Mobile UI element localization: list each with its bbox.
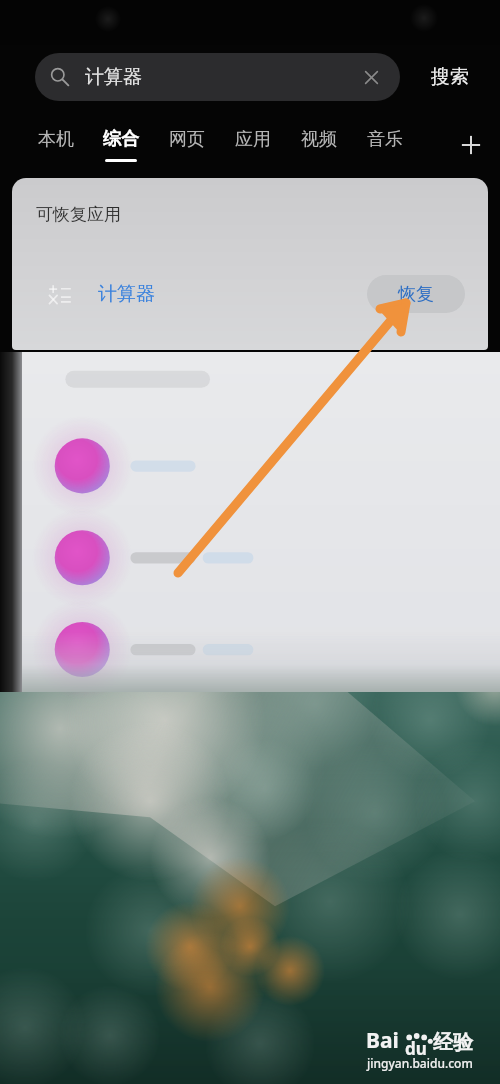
staticText: 经验 — [433, 1030, 473, 1055]
button[interactable]: 计算器 — [35, 53, 400, 101]
button[interactable]: 本机 — [24, 118, 88, 172]
staticText: 应用 — [235, 128, 271, 151]
button[interactable]: Add tab — [442, 118, 500, 172]
staticText: 本机 — [38, 128, 74, 151]
staticText: 计算器 — [98, 282, 155, 306]
staticText: 恢复 — [398, 283, 434, 306]
staticText: 综合 — [103, 128, 139, 151]
button[interactable]: 应用 — [220, 118, 286, 172]
staticText: 计算器 — [85, 65, 142, 89]
button[interactable]: 综合 — [88, 118, 154, 172]
staticText: jingyan.baidu.com — [367, 1055, 473, 1071]
button[interactable]: 计算器 — [12, 262, 488, 326]
button[interactable]: Clear search — [356, 62, 386, 92]
button[interactable]: 搜索 — [400, 53, 500, 101]
staticText: 可恢复应用 — [36, 204, 121, 225]
button[interactable]: 音乐 — [352, 118, 418, 172]
button[interactable]: 视频 — [286, 118, 352, 172]
staticText: 搜索 — [431, 65, 469, 89]
staticText: du — [405, 1037, 427, 1060]
button[interactable]: 网页 — [154, 118, 220, 172]
staticText: 网页 — [169, 128, 205, 151]
button[interactable]: 恢复 — [367, 275, 465, 313]
staticText: 音乐 — [367, 128, 403, 151]
staticText: Bai — [366, 1026, 399, 1055]
staticText: 视频 — [301, 128, 337, 151]
